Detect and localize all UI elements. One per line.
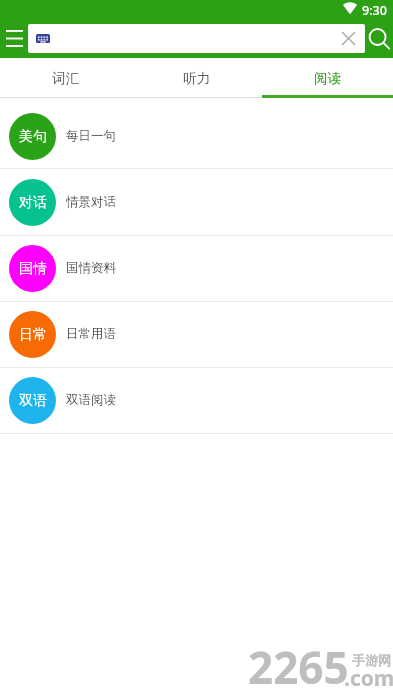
button[interactable]: Search input bbox=[28, 24, 365, 53]
staticText: 情景对话 bbox=[66, 194, 116, 210]
button[interactable]: 日常 bbox=[0, 301, 393, 367]
button[interactable]: 对话 bbox=[0, 169, 393, 235]
staticText: .com bbox=[344, 664, 393, 693]
button[interactable]: Clear bbox=[336, 24, 365, 53]
staticText: 阅读 bbox=[314, 70, 341, 87]
button[interactable]: 听力 bbox=[131, 58, 262, 98]
staticText: 美句 bbox=[19, 128, 47, 146]
button[interactable]: 双语 bbox=[0, 367, 393, 433]
button[interactable]: 美句 bbox=[0, 103, 393, 169]
staticText: 每日一句 bbox=[66, 128, 116, 144]
staticText: 听力 bbox=[183, 70, 210, 87]
button[interactable]: Menu bbox=[0, 18, 28, 58]
button[interactable]: 国情 bbox=[0, 235, 393, 301]
staticText: 9:30 bbox=[362, 2, 387, 19]
button[interactable]: 阅读 bbox=[262, 58, 393, 98]
staticText: 日常 bbox=[19, 326, 47, 344]
staticText: 对话 bbox=[19, 194, 47, 212]
staticText: 双语阅读 bbox=[66, 392, 116, 408]
staticText: 手游网 bbox=[352, 652, 391, 668]
staticText: 2265 bbox=[248, 637, 349, 697]
staticText: 双语 bbox=[19, 392, 47, 410]
button[interactable]: Search bbox=[365, 18, 393, 58]
staticText: 国情资料 bbox=[66, 260, 116, 276]
button[interactable]: 词汇 bbox=[0, 58, 131, 98]
staticText: 国情 bbox=[19, 260, 47, 278]
staticText: 日常用语 bbox=[66, 326, 116, 342]
staticText: 词汇 bbox=[52, 70, 79, 87]
